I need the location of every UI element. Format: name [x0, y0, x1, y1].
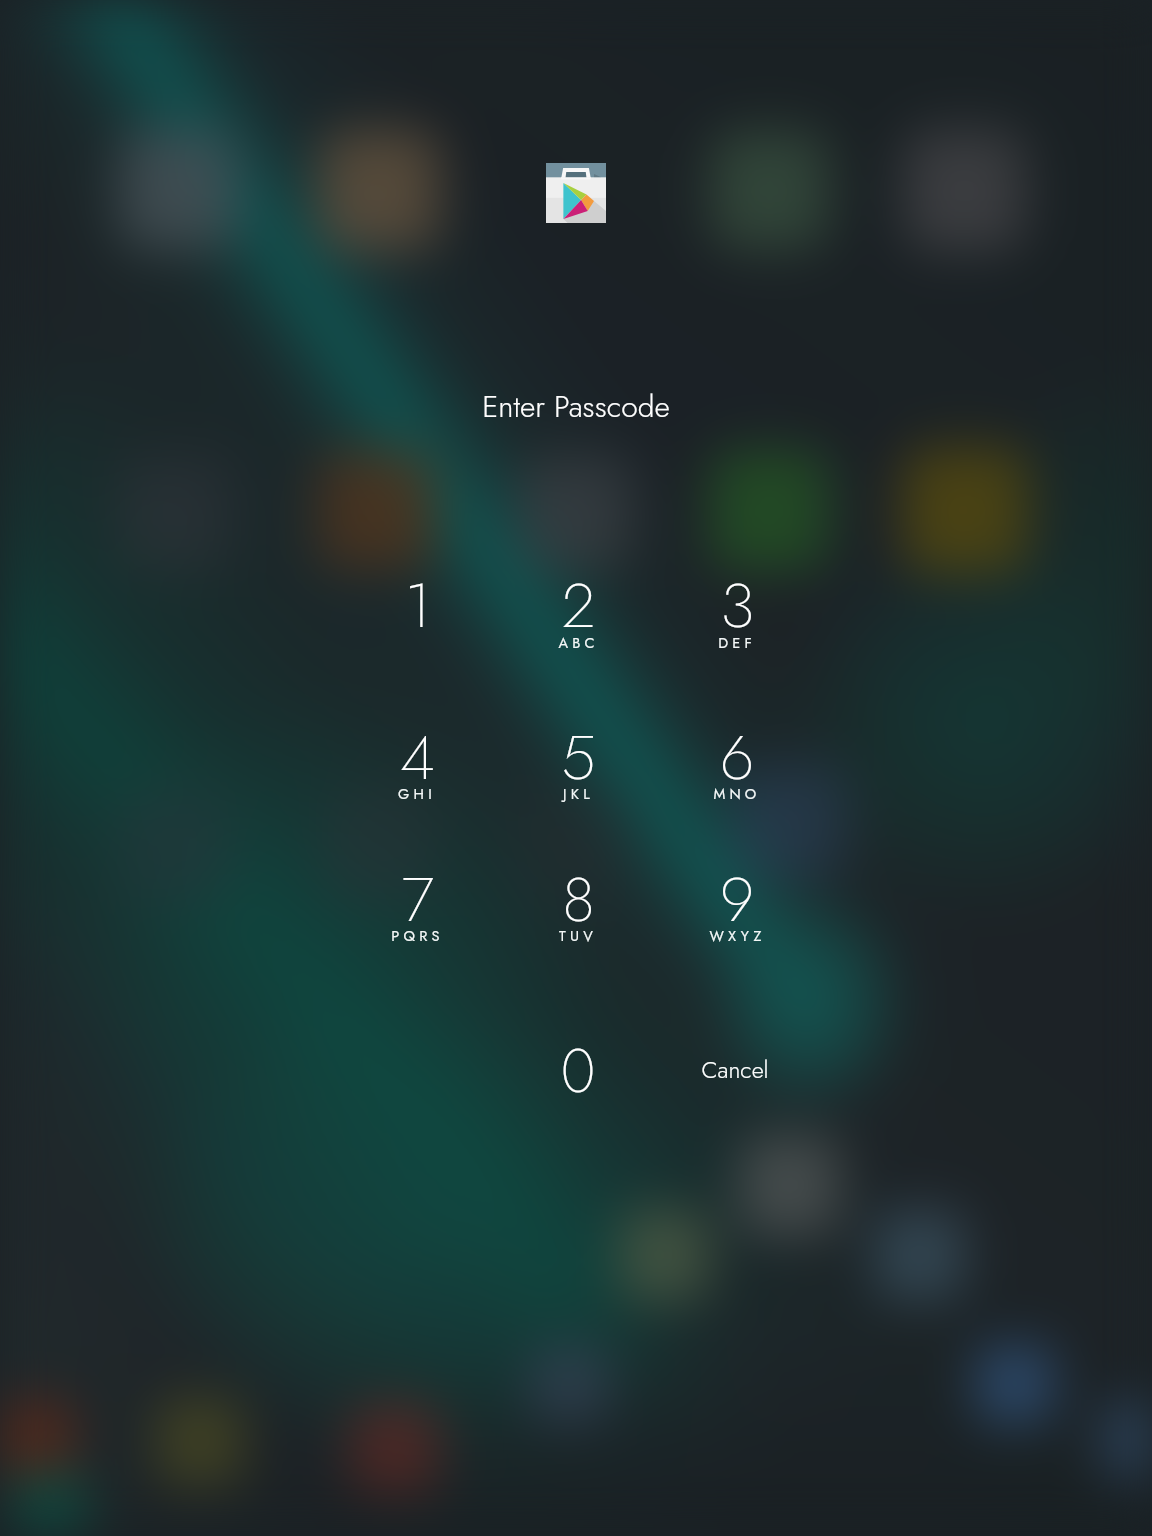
- staticText: Enter Passcode: [482, 385, 670, 428]
- staticText: PQRS: [391, 925, 444, 946]
- staticText: 8: [562, 855, 595, 945]
- staticText: 9: [720, 855, 754, 945]
- button[interactable]: 2 ABC: [502, 543, 654, 683]
- staticText: 4: [400, 713, 435, 803]
- button[interactable]: 5 JKL: [502, 695, 654, 835]
- button[interactable]: 9 WXYZ: [661, 837, 813, 977]
- staticText: 6: [720, 713, 754, 803]
- button[interactable]: 8 TUV: [502, 837, 654, 977]
- staticText: MNO: [713, 783, 761, 804]
- staticText: 2: [562, 561, 595, 651]
- staticText: GHI: [398, 783, 436, 804]
- other: Google Play Store: [546, 163, 606, 223]
- button[interactable]: 7 PQRS: [341, 837, 493, 977]
- staticText: DEF: [718, 632, 756, 653]
- button[interactable]: 6 MNO: [661, 695, 813, 835]
- staticText: 7: [401, 855, 434, 945]
- staticText: ABC: [558, 632, 599, 653]
- staticText: 0: [560, 1026, 596, 1116]
- button[interactable]: 0: [502, 1008, 654, 1108]
- staticText: 1: [404, 561, 431, 651]
- button[interactable]: Cancel: [650, 1032, 820, 1108]
- staticText: 3: [720, 561, 755, 651]
- staticText: 5: [561, 713, 596, 803]
- staticText: WXYZ: [709, 925, 766, 946]
- button[interactable]: 3 DEF: [661, 543, 813, 683]
- staticText: Cancel: [701, 1053, 769, 1087]
- staticText: JKL: [563, 783, 594, 804]
- button[interactable]: 4 GHI: [341, 695, 493, 835]
- staticText: TUV: [559, 925, 597, 946]
- button[interactable]: 1: [341, 543, 493, 683]
